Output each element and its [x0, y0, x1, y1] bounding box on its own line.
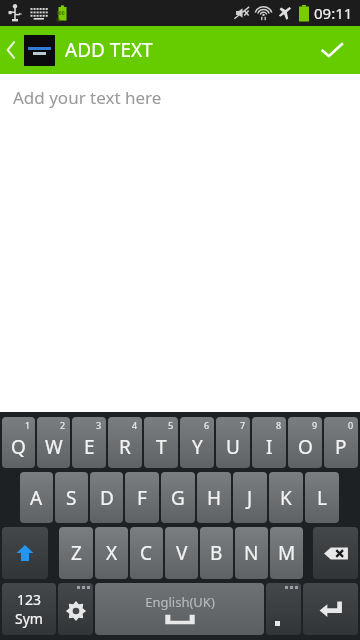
staticText: J — [247, 485, 253, 511]
staticText: O — [298, 434, 313, 460]
button[interactable]: T — [144, 417, 178, 468]
staticText: Y — [192, 434, 203, 460]
staticText: English(UK) — [145, 593, 215, 611]
staticText: 100% — [56, 10, 69, 24]
staticText: 6 — [204, 419, 210, 431]
staticText: Sym — [15, 609, 43, 628]
staticText: G — [171, 485, 185, 511]
button[interactable]: C — [130, 527, 163, 579]
staticText: L — [317, 485, 327, 511]
staticText: 2 — [60, 419, 66, 431]
button[interactable]: 123 — [2, 583, 56, 635]
staticText: Add your text here — [13, 86, 162, 109]
button[interactable]: F — [125, 472, 159, 523]
staticText: 3 — [96, 419, 102, 431]
button[interactable]: Shift — [2, 527, 48, 579]
staticText: U — [226, 434, 240, 460]
staticText: A — [30, 485, 43, 511]
button[interactable]: G — [161, 472, 195, 523]
staticText: ADD TEXT — [65, 37, 153, 63]
staticText: E — [84, 434, 95, 460]
staticText: Q — [11, 434, 26, 460]
staticText: 7 — [240, 419, 246, 431]
staticText: 1 — [25, 419, 31, 431]
staticText: V — [176, 540, 188, 566]
staticText: R — [119, 434, 131, 460]
staticText: 123 — [17, 590, 42, 609]
button[interactable]: H — [197, 472, 231, 523]
staticText: 5 — [168, 419, 174, 431]
staticText: Z — [71, 540, 82, 566]
staticText: D — [100, 485, 114, 511]
button[interactable]: N — [235, 527, 268, 579]
button[interactable]: M — [270, 527, 303, 579]
button[interactable]: J — [233, 472, 267, 523]
staticText: 4 — [132, 419, 138, 431]
button[interactable]: W — [37, 417, 70, 468]
staticText: P — [335, 434, 347, 460]
staticText: M — [278, 540, 296, 566]
staticText: 09:11 — [314, 3, 353, 23]
staticText: S — [66, 485, 77, 511]
staticText: 0 — [348, 419, 354, 431]
other: Back — [4, 39, 18, 61]
button[interactable]: Y — [180, 417, 214, 468]
staticText: I — [266, 434, 273, 460]
button[interactable]: Q — [2, 417, 35, 468]
staticText: W — [45, 434, 63, 460]
button[interactable]: Enter — [303, 583, 358, 635]
staticText: K — [280, 485, 292, 511]
button[interactable]: I — [252, 417, 286, 468]
button[interactable]: Backspace — [313, 527, 358, 579]
button[interactable]: Period — [266, 583, 301, 635]
staticText: F — [137, 485, 147, 511]
button[interactable]: E — [72, 417, 106, 468]
staticText: T — [156, 434, 167, 460]
staticText: X — [106, 540, 118, 566]
staticText: C — [140, 540, 153, 566]
button[interactable]: L — [305, 472, 339, 523]
button[interactable]: O — [288, 417, 322, 468]
staticText: N — [244, 540, 259, 566]
button[interactable]: V — [165, 527, 198, 579]
button[interactable]: Done — [304, 26, 360, 74]
button[interactable]: Z — [59, 527, 93, 579]
button[interactable]: K — [269, 472, 303, 523]
staticText: 9 — [312, 419, 318, 431]
button[interactable]: P — [324, 417, 358, 468]
button[interactable]: Back — [0, 26, 159, 74]
button[interactable]: X — [95, 527, 128, 579]
button[interactable]: S — [55, 472, 88, 523]
button[interactable]: R — [108, 417, 142, 468]
button[interactable]: A — [20, 472, 53, 523]
staticText: 8 — [276, 419, 282, 431]
button[interactable]: English(UK) — [95, 583, 264, 635]
button[interactable]: D — [90, 472, 123, 523]
button[interactable]: Settings — [58, 583, 93, 635]
staticText: B — [210, 540, 223, 566]
button[interactable]: U — [216, 417, 250, 468]
button[interactable]: Add your text here — [0, 74, 360, 412]
staticText: H — [207, 485, 222, 511]
button[interactable]: B — [200, 527, 233, 579]
